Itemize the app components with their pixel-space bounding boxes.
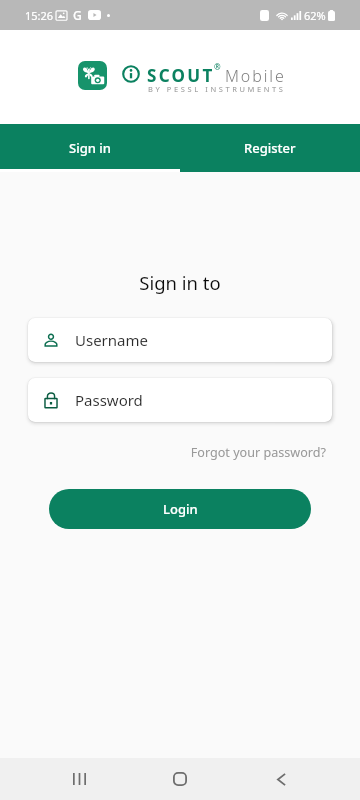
button[interactable]: Password	[28, 378, 332, 422]
staticText: ®	[214, 61, 221, 72]
staticText: Username	[75, 330, 148, 350]
button[interactable]: Login	[49, 489, 311, 529]
staticText: Forgot your password?	[0, 444, 326, 461]
staticText: Sign in to	[0, 270, 360, 295]
button[interactable]: Recent apps	[49, 758, 109, 800]
staticText: Login	[163, 500, 198, 518]
staticText: BY PESSL INSTRUMENTS	[148, 84, 286, 94]
staticText: SCOUT	[147, 64, 215, 87]
staticText: Password	[75, 390, 143, 410]
staticText: 15:26	[25, 8, 54, 23]
button[interactable]: Sign in	[0, 124, 180, 172]
button[interactable]: Register	[180, 124, 360, 172]
staticText: G	[73, 7, 82, 23]
staticText: Register	[244, 139, 296, 157]
button[interactable]: Back	[251, 758, 311, 800]
button[interactable]: Username	[28, 318, 332, 362]
staticText: 62%	[304, 8, 326, 23]
button[interactable]: Home	[150, 758, 210, 800]
staticText: Mobile	[225, 65, 286, 87]
staticText: Sign in	[69, 139, 111, 157]
